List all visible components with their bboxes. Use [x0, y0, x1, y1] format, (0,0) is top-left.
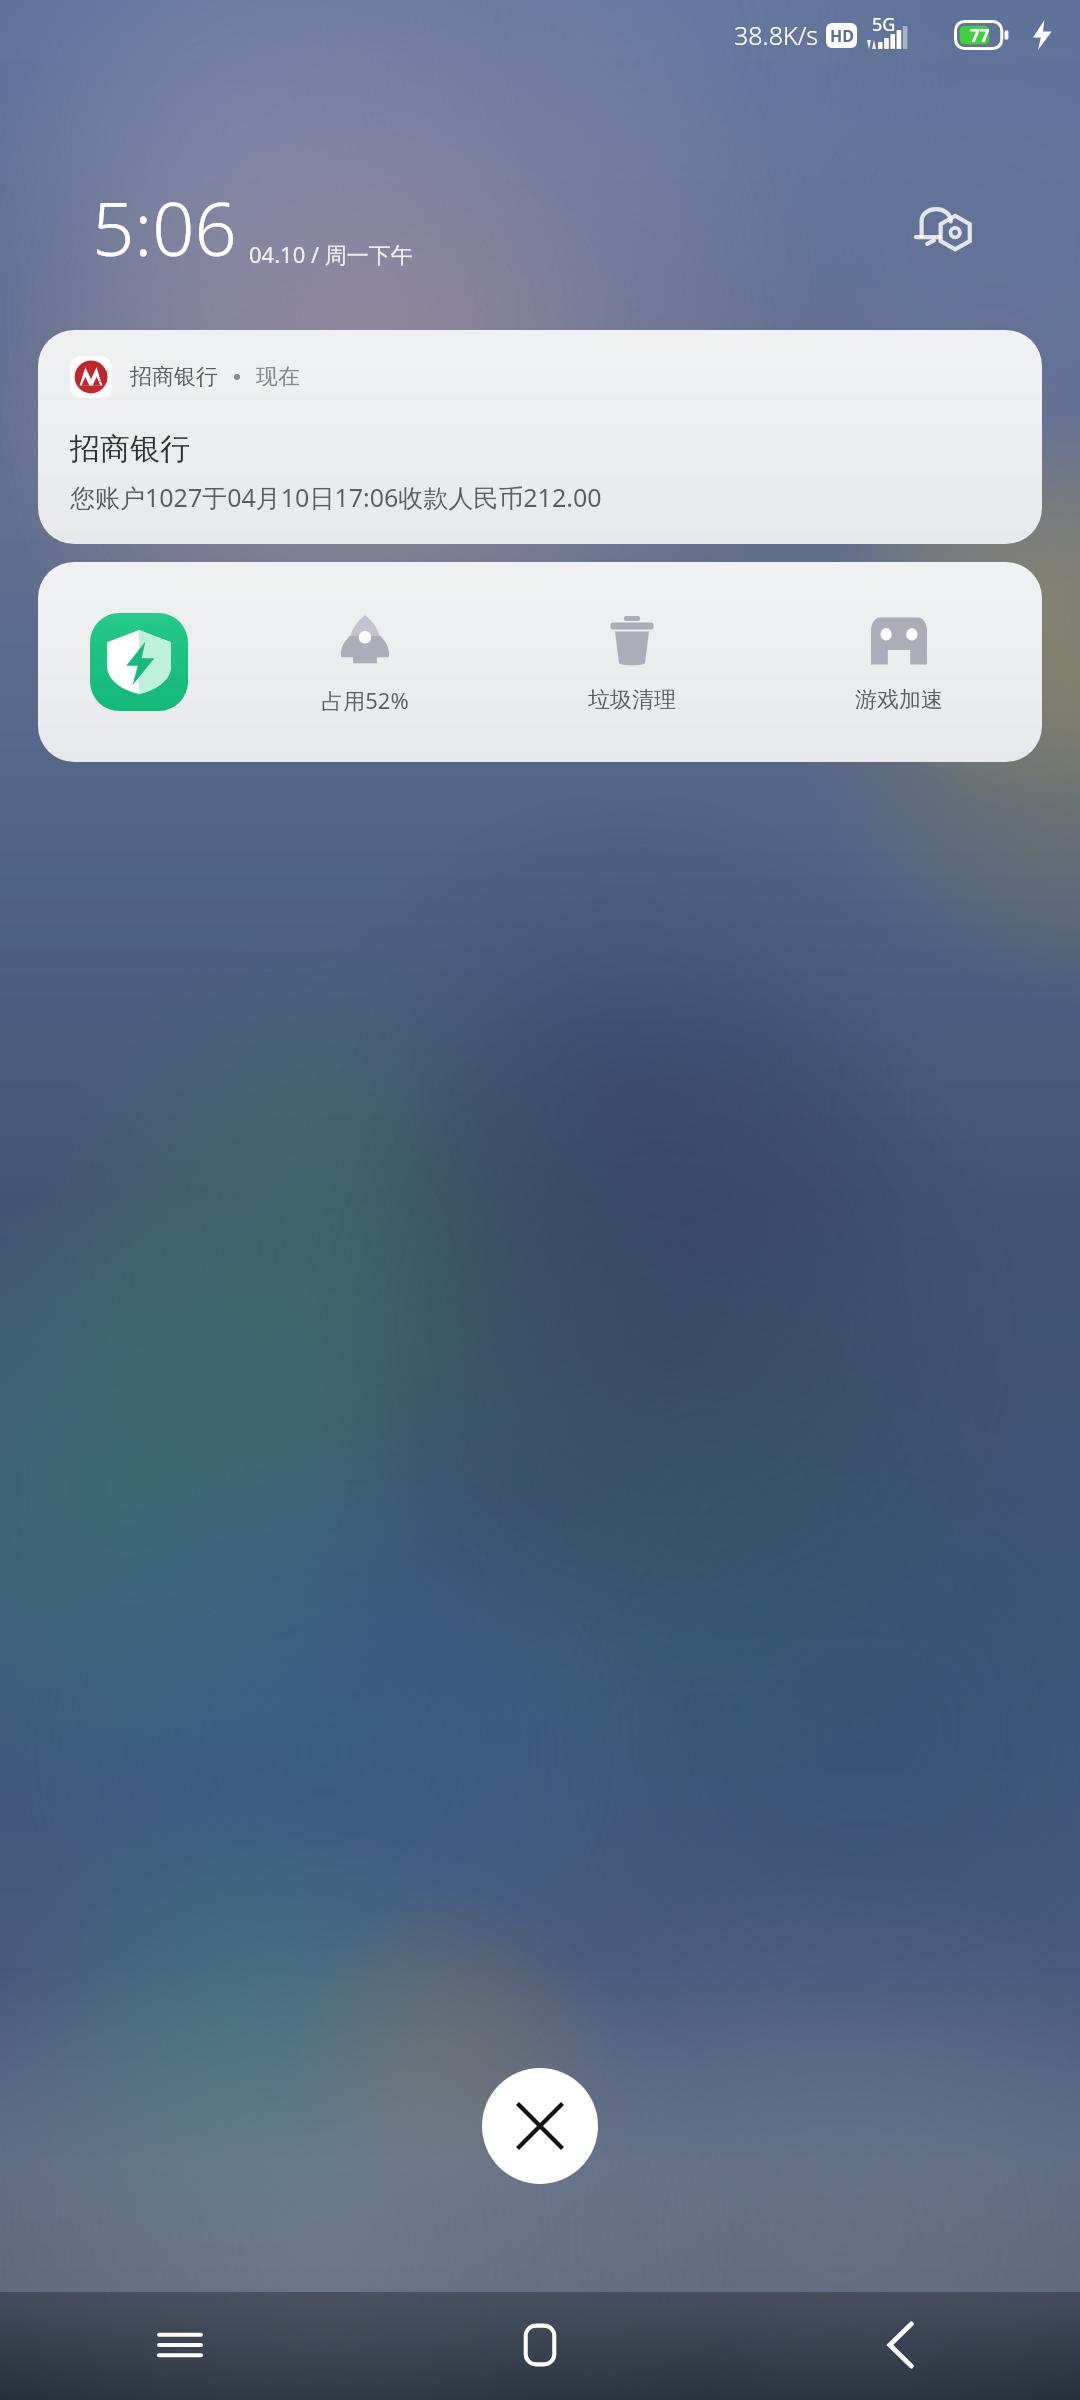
staticText: HD [830, 25, 854, 47]
button[interactable]: Security app [90, 613, 188, 711]
staticText: 38.8K/s [734, 18, 819, 52]
staticText: 5:06 [92, 177, 237, 278]
staticText: 招商银行 [70, 430, 190, 468]
button[interactable]: Notification settings [899, 182, 989, 272]
button[interactable]: 垃圾清理 [548, 606, 716, 718]
button[interactable]: Back [720, 2290, 1080, 2400]
staticText: 04.10 / 周一下午 [249, 239, 413, 269]
staticText: 招商银行 [130, 363, 218, 391]
button[interactable]: 招商银行 [38, 330, 1042, 544]
staticText: 5G [872, 12, 896, 37]
button[interactable]: Close notifications [482, 2068, 598, 2184]
staticText: 77 [970, 24, 990, 47]
staticText: 垃圾清理 [588, 686, 676, 714]
staticText: 您账户1027于04月10日17:06收款人民币212.00 [70, 480, 602, 514]
button[interactable]: Recents [0, 2290, 360, 2400]
button[interactable]: 占用52% [281, 605, 449, 719]
staticText: 占用52% [321, 685, 409, 715]
button[interactable]: Home [360, 2290, 720, 2400]
button[interactable]: 游戏加速 [815, 606, 983, 718]
staticText: 游戏加速 [855, 686, 943, 714]
staticText: 现在 [256, 363, 300, 391]
